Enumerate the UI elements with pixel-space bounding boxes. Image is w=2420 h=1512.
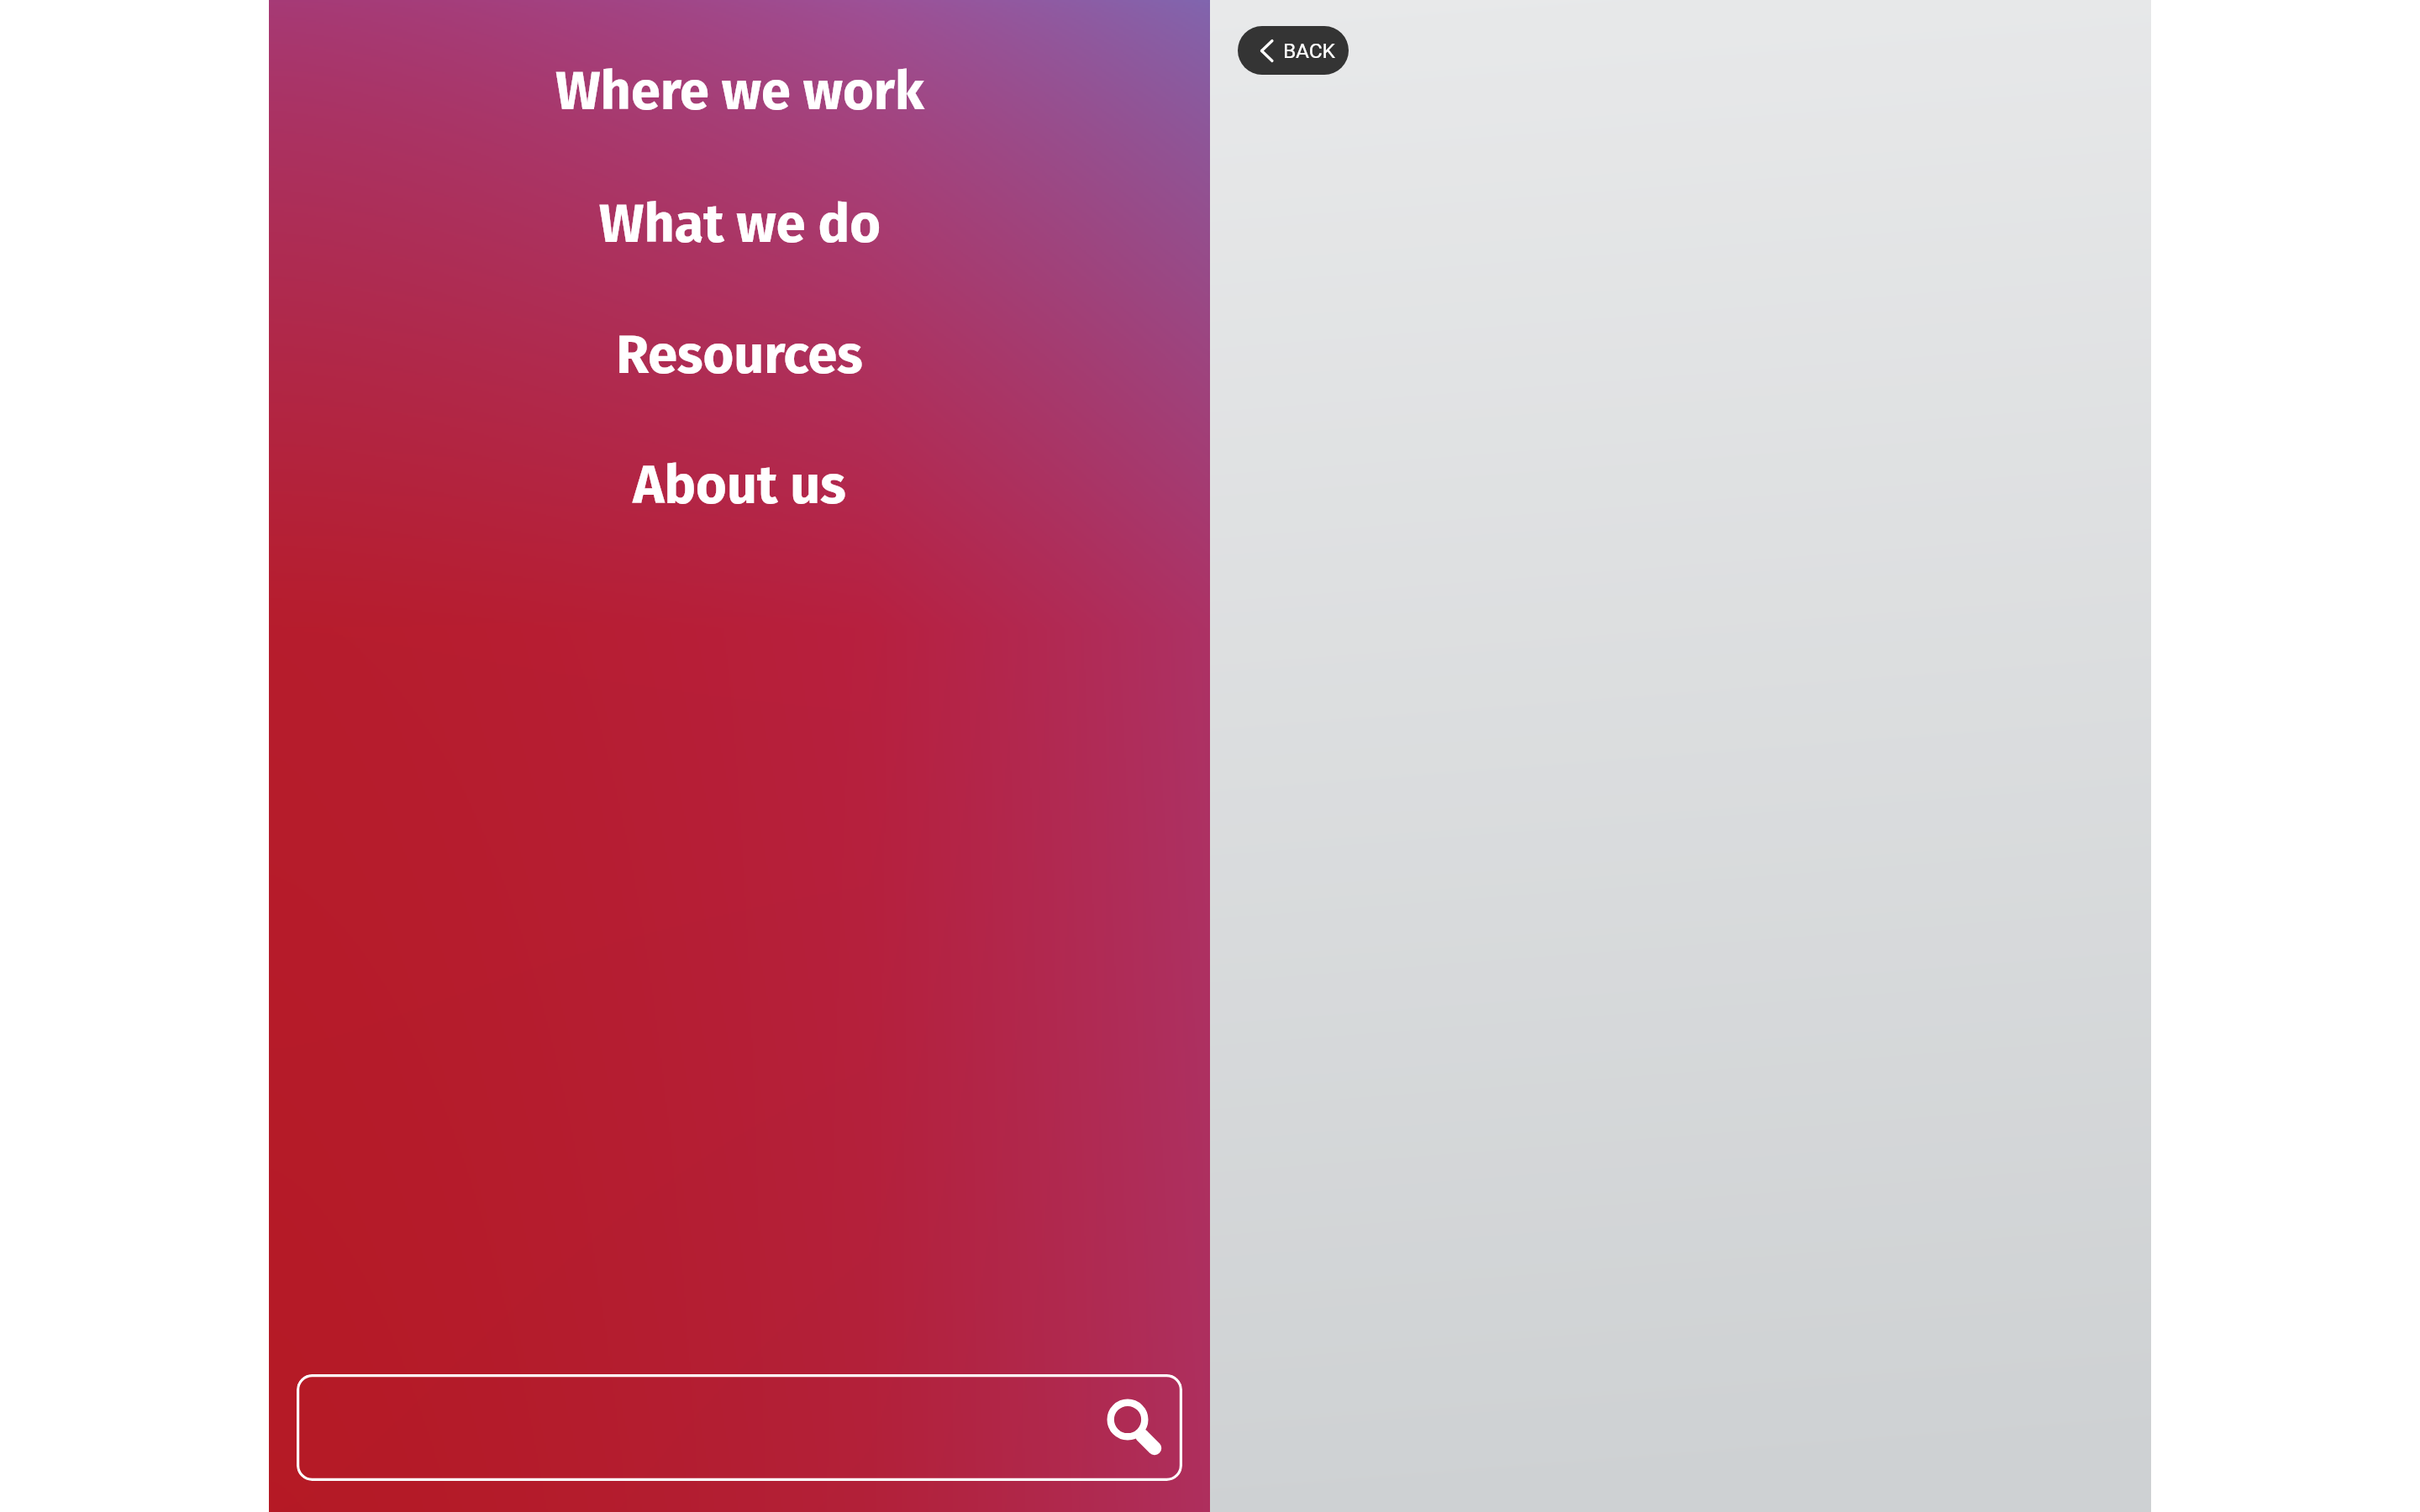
staticText: What we do [599, 192, 881, 256]
staticText: Resources [616, 323, 863, 387]
staticText: About us [633, 454, 846, 517]
button[interactable]: What we do [269, 186, 1210, 262]
button[interactable]: About us [269, 448, 1210, 523]
button[interactable]: Search [297, 1374, 1182, 1481]
button[interactable]: Resources [269, 318, 1210, 393]
button[interactable]: Back [1238, 26, 1349, 75]
staticText: Where we work [555, 60, 924, 123]
button[interactable]: Where we work [269, 54, 1210, 129]
staticText: BACK [1283, 39, 1335, 63]
